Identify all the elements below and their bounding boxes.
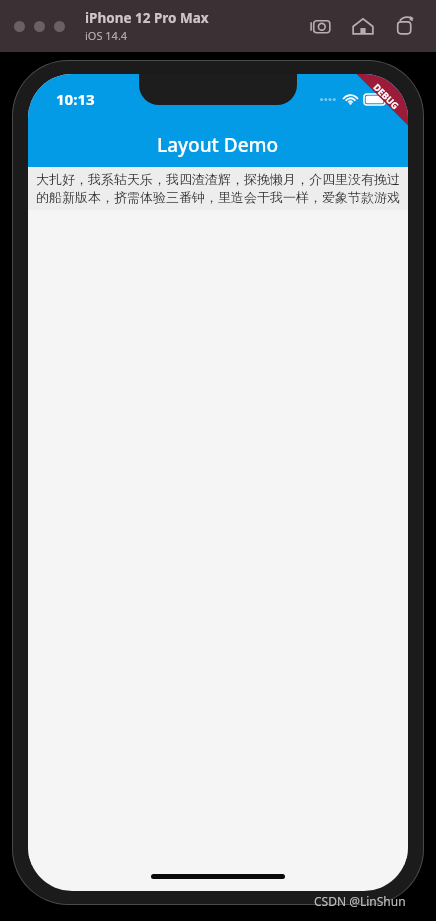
staticText: 大扎好，我系轱天乐，我四渣渣辉，探挽懒月，介四里没有挽过的船新版本，挤需体验三番… bbox=[31, 171, 405, 206]
staticText: Layout Demo bbox=[157, 132, 279, 158]
staticText: iPhone 12 Pro Max bbox=[85, 9, 209, 27]
button[interactable]: Screenshot bbox=[308, 13, 334, 39]
staticText: DEBUG bbox=[371, 81, 402, 111]
button[interactable] bbox=[54, 21, 65, 32]
button[interactable] bbox=[14, 21, 25, 32]
button[interactable]: Home bbox=[350, 13, 376, 39]
button[interactable]: 大扎好，我系轱天乐，我四渣渣辉，探挽懒月，介四里没有挽过的船新版本，挤需体验三番… bbox=[28, 167, 408, 210]
staticText: 10:13 bbox=[56, 89, 95, 109]
staticText: iOS 14.4 bbox=[85, 28, 128, 43]
button[interactable]: Rotate bbox=[392, 13, 418, 39]
staticText: CSDN @LinShun bbox=[314, 893, 406, 909]
button[interactable] bbox=[34, 21, 45, 32]
